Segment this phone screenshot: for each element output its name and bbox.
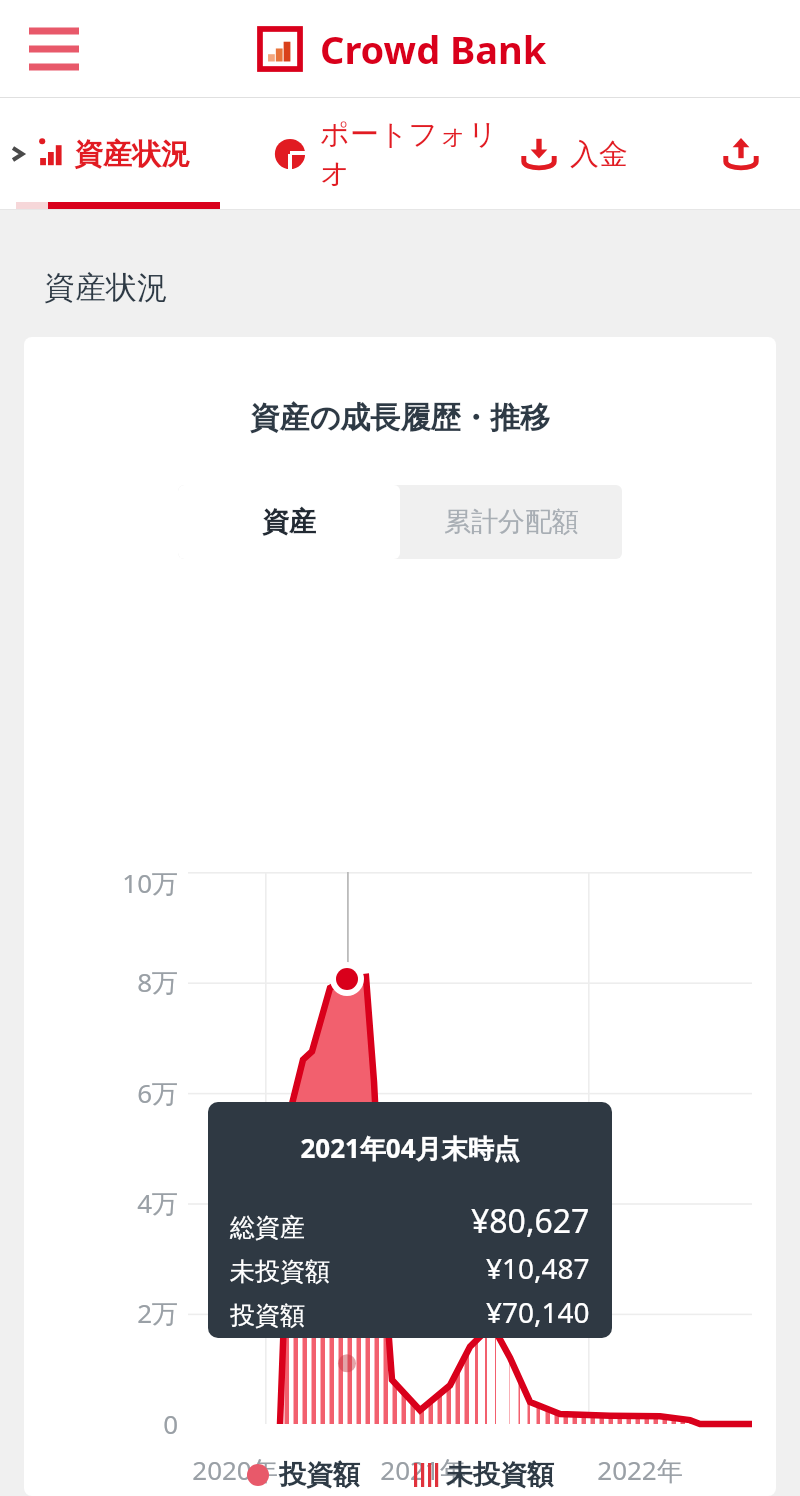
staticText: Crowd Bank — [320, 23, 547, 75]
staticText: 2万 — [24, 1295, 178, 1331]
staticText: 未投資額 — [230, 1256, 330, 1287]
staticText: 投資額 — [279, 1458, 360, 1492]
staticText: 2021年04月末時点 — [208, 1130, 612, 1166]
staticText: 資産状況 — [44, 268, 168, 307]
button[interactable]: Menu — [18, 13, 90, 85]
staticText: 投資額 — [230, 1300, 305, 1331]
staticText: ¥80,627 — [471, 1199, 590, 1243]
staticText: 累計分配額 — [444, 505, 579, 539]
staticText: 6万 — [24, 1075, 178, 1111]
staticText: 資産 — [262, 505, 316, 539]
button[interactable]: 入金 — [520, 98, 710, 210]
button[interactable]: 累計分配額 — [400, 485, 622, 559]
staticText: 2022年 — [570, 1452, 710, 1488]
staticText: 4万 — [24, 1185, 178, 1221]
staticText: 2021年 — [353, 1452, 493, 1488]
button[interactable]: ポートフォリオ — [220, 98, 520, 210]
staticText: 資産の成長履歴・推移 — [24, 399, 776, 437]
staticText: ¥70,140 — [486, 1293, 590, 1331]
staticText: 総資産 — [230, 1212, 305, 1243]
staticText: 8万 — [24, 964, 178, 1000]
staticText: 未投資額 — [446, 1458, 554, 1492]
staticText: 10万 — [24, 865, 178, 901]
staticText: ¥10,487 — [486, 1249, 590, 1287]
button[interactable]: 資産状況 — [0, 98, 220, 210]
staticText: 0 — [24, 1406, 178, 1441]
button[interactable]: 資産 — [178, 485, 400, 559]
staticText: 2020年 — [165, 1452, 305, 1488]
staticText: ポートフォリオ — [320, 116, 520, 192]
staticText: 資産状況 — [74, 136, 190, 173]
staticText: 入金 — [570, 136, 628, 173]
button[interactable]: 出金 — [710, 98, 800, 210]
